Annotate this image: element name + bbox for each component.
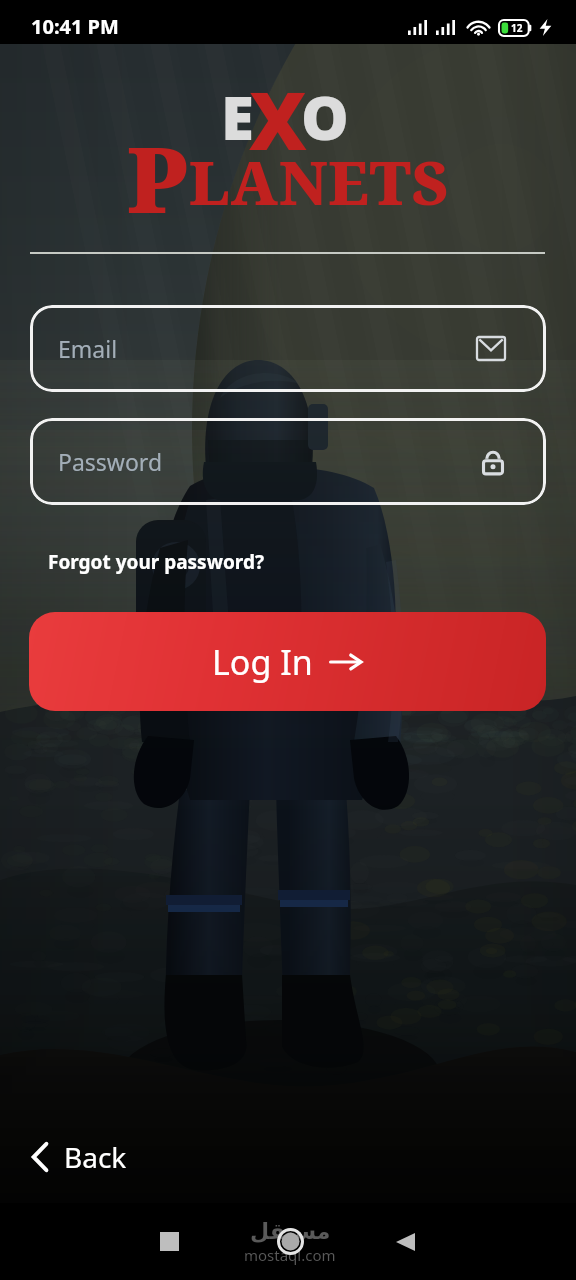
button[interactable]: Log In [29,612,546,711]
button[interactable]: Back [24,1132,133,1182]
button[interactable]: Back [383,1203,427,1280]
button[interactable]: Forgot your password? [45,546,267,578]
staticText: Back [64,1138,127,1176]
button[interactable]: Home [268,1203,312,1280]
staticText: 12 [511,21,523,35]
staticText: LANETS [189,141,449,223]
staticText: X [249,64,307,173]
staticText: 10:41 PM [31,13,119,40]
staticText: O [301,76,349,158]
staticText: E [221,76,254,158]
staticText: Log In [212,639,313,685]
button[interactable]: Recent apps [147,1203,191,1280]
staticText: Password [58,446,163,477]
staticText: mostaql.com [244,1245,336,1265]
staticText: P [127,117,187,240]
staticText: Email [58,333,118,364]
staticText: مستقل [250,1219,331,1245]
button[interactable]: Email [30,305,546,392]
button[interactable]: Password [30,418,546,505]
